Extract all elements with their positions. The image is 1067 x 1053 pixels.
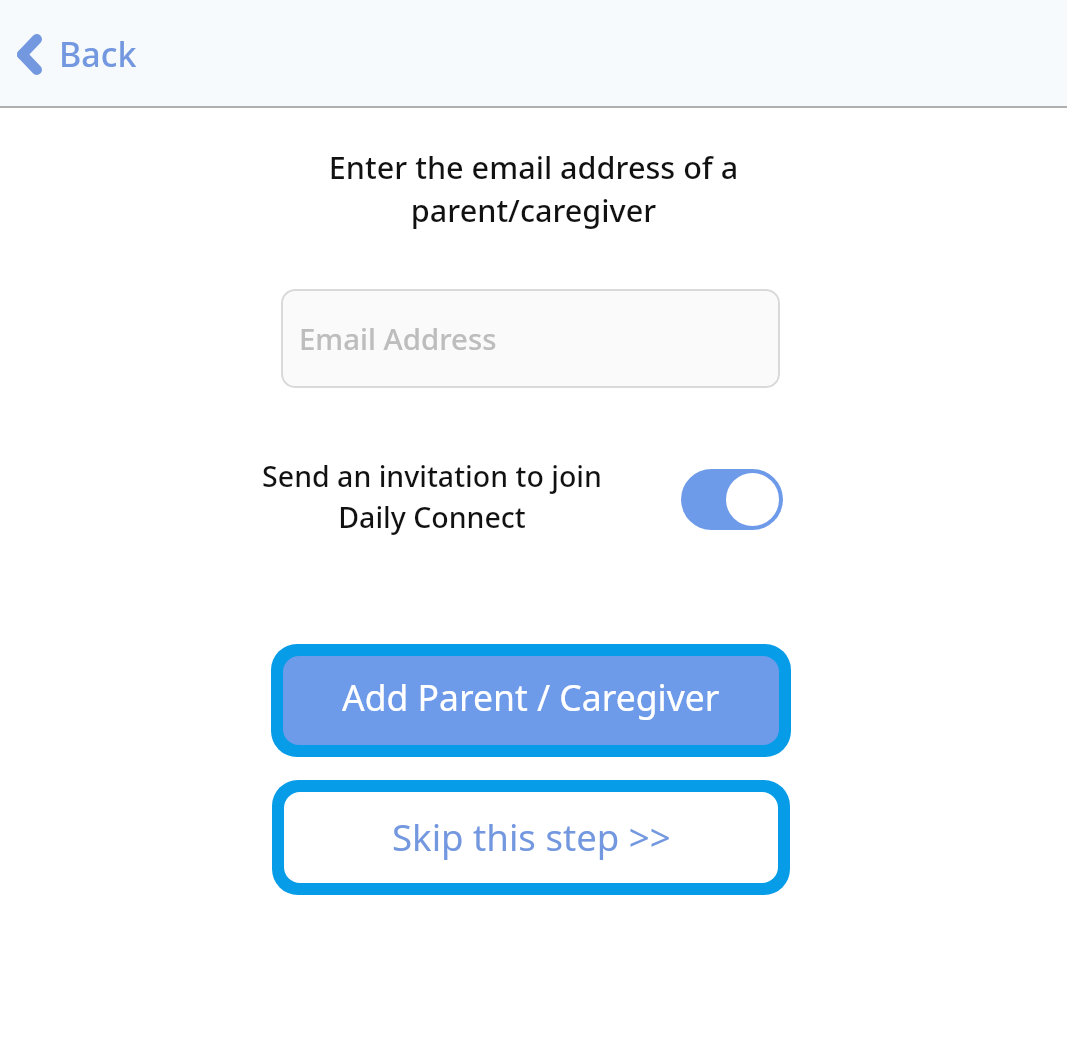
staticText: Email Address: [299, 319, 497, 359]
button[interactable]: Skip this step >>: [272, 780, 790, 895]
staticText: Skip this step >>: [392, 812, 671, 862]
button[interactable]: Back: [0, 19, 157, 89]
button[interactable]: Add Parent / Caregiver: [271, 644, 791, 757]
button[interactable]: Send an invitation to join Daily Connect: [681, 469, 783, 530]
staticText: Back: [59, 31, 137, 77]
staticText: Send an invitation to join Daily Connect: [232, 457, 632, 537]
staticText: Add Parent / Caregiver: [342, 673, 720, 721]
other: Back: [17, 34, 42, 75]
staticText: Enter the email address of a parent/care…: [24, 146, 1043, 231]
button[interactable]: Email Address: [281, 289, 780, 388]
